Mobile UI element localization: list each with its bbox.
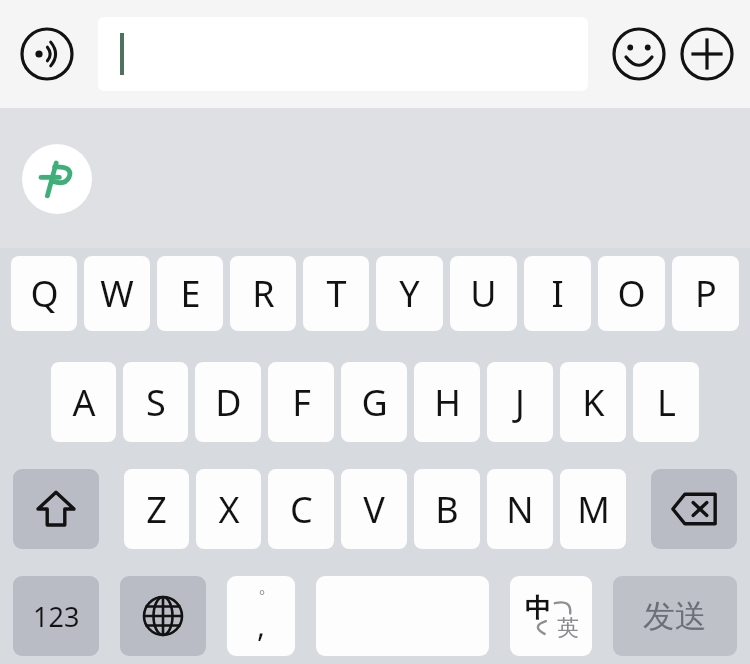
staticText: W <box>100 269 134 318</box>
staticText: K <box>582 378 605 427</box>
button[interactable]: N <box>487 469 553 549</box>
staticText: T <box>326 269 347 318</box>
button[interactable]: W <box>84 256 150 331</box>
staticText: Z <box>146 485 167 534</box>
button[interactable]: Q <box>11 256 77 331</box>
staticText: M <box>577 485 610 534</box>
staticText: I <box>551 269 564 318</box>
button[interactable]: S <box>123 362 188 442</box>
button[interactable]: P <box>672 256 739 331</box>
button[interactable]: O <box>598 256 665 331</box>
staticText: Y <box>399 269 420 318</box>
button[interactable]: G <box>341 362 407 442</box>
staticText: Q <box>30 269 59 318</box>
button[interactable]: H <box>414 362 480 442</box>
button[interactable]: More <box>678 25 736 83</box>
staticText: ° <box>259 586 265 605</box>
staticText: X <box>218 485 240 534</box>
button[interactable]: B <box>414 469 480 549</box>
button[interactable]: U <box>450 256 517 331</box>
button[interactable]: Z <box>124 469 189 549</box>
button[interactable]: A <box>51 362 116 442</box>
staticText: A <box>72 378 96 427</box>
staticText: 发送 <box>643 596 707 636</box>
staticText: P <box>695 269 717 318</box>
staticText: E <box>180 269 201 318</box>
button[interactable]: E <box>157 256 223 331</box>
staticText: , <box>257 605 266 646</box>
staticText: V <box>363 485 385 534</box>
staticText: R <box>252 269 275 318</box>
staticText: S <box>146 378 166 427</box>
button[interactable]: Avatar <box>22 144 92 214</box>
staticText: G <box>361 378 388 427</box>
button[interactable]: V <box>341 469 407 549</box>
staticText: H <box>434 378 461 427</box>
staticText: 英 <box>557 614 579 642</box>
staticText: N <box>506 485 534 534</box>
staticText: O <box>617 269 646 318</box>
button[interactable]: Switch language <box>120 576 206 656</box>
button[interactable]: Emoji <box>610 25 668 83</box>
staticText: C <box>290 485 313 534</box>
staticText: L <box>657 378 676 427</box>
staticText: J <box>515 378 525 427</box>
button[interactable]: X <box>196 469 261 549</box>
staticText: 123 <box>33 598 80 635</box>
button[interactable]: Shift <box>13 469 99 549</box>
staticText: D <box>215 378 242 427</box>
button[interactable]: Chinese English toggle <box>510 576 592 656</box>
staticText: F <box>292 378 311 427</box>
button[interactable]: J <box>487 362 553 442</box>
button[interactable]: I <box>524 256 591 331</box>
button[interactable]: K <box>560 362 626 442</box>
button[interactable]: R <box>230 256 296 331</box>
button[interactable] <box>98 17 588 91</box>
button[interactable]: 发送 <box>613 576 737 656</box>
button[interactable]: C <box>268 469 334 549</box>
button[interactable]: ° <box>227 576 295 656</box>
button[interactable]: F <box>268 362 334 442</box>
button[interactable]: L <box>633 362 699 442</box>
button[interactable]: Voice message <box>18 25 76 83</box>
staticText: 中 <box>525 592 551 625</box>
button[interactable]: Backspace <box>651 469 737 549</box>
staticText: U <box>470 269 497 318</box>
button[interactable]: T <box>303 256 369 331</box>
staticText: B <box>435 485 459 534</box>
button[interactable]: M <box>560 469 626 549</box>
button[interactable]: Y <box>376 256 443 331</box>
button[interactable]: 123 <box>13 576 99 656</box>
button[interactable]: D <box>195 362 261 442</box>
